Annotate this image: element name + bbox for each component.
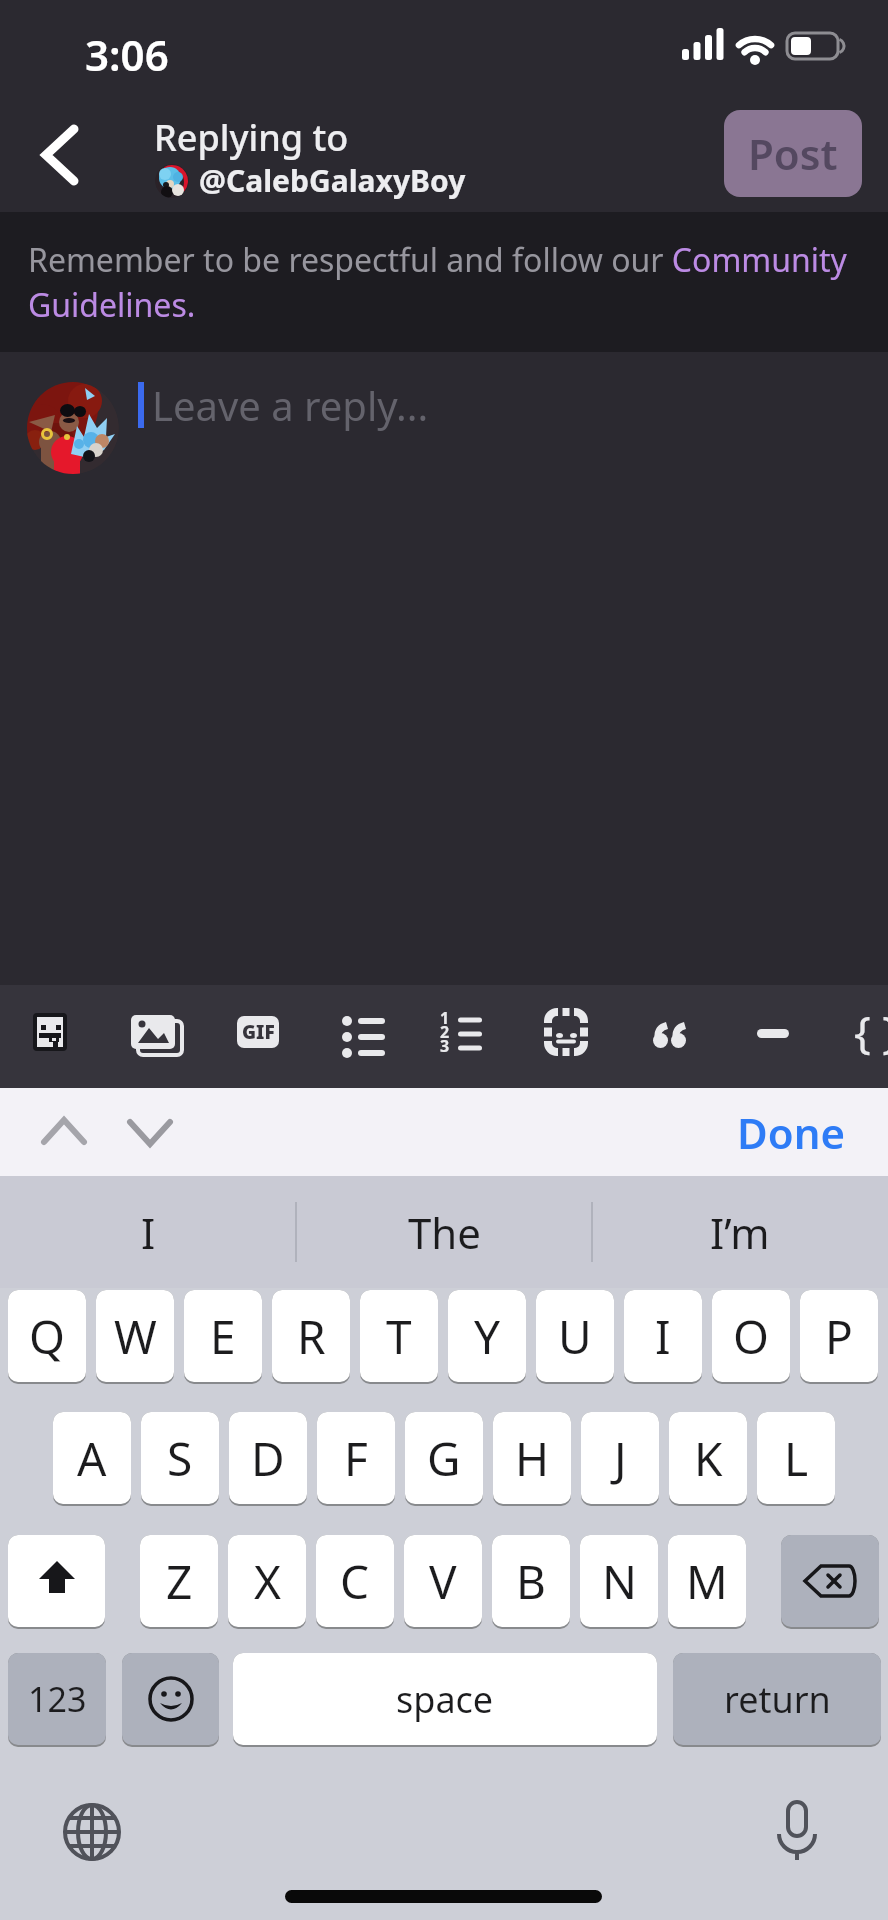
- staticText: W: [114, 1305, 157, 1368]
- button[interactable]: K: [669, 1412, 747, 1506]
- staticText: Q: [29, 1305, 65, 1368]
- button[interactable]: P: [800, 1290, 878, 1384]
- button[interactable]: [555, 985, 666, 1088]
- button[interactable]: X: [228, 1535, 306, 1629]
- button[interactable]: [777, 985, 888, 1088]
- button[interactable]: U: [536, 1290, 614, 1384]
- staticText: I: [655, 1305, 671, 1368]
- button[interactable]: W: [96, 1290, 174, 1384]
- button[interactable]: O: [712, 1290, 790, 1384]
- button[interactable]: A: [53, 1412, 131, 1506]
- staticText: R: [297, 1305, 326, 1368]
- button[interactable]: 123: [8, 1653, 106, 1747]
- staticText: space: [396, 1675, 494, 1724]
- button[interactable]: G: [405, 1412, 483, 1506]
- staticText: return: [724, 1675, 831, 1724]
- staticText: 1: [440, 1007, 450, 1029]
- staticText: I: [141, 1204, 156, 1261]
- button[interactable]: [27, 382, 119, 474]
- staticText: GIF: [242, 1019, 275, 1045]
- staticText: L: [784, 1427, 809, 1490]
- button[interactable]: F: [317, 1412, 395, 1506]
- button[interactable]: [444, 985, 555, 1088]
- staticText: V: [429, 1550, 457, 1613]
- staticText: Leave a reply...: [152, 378, 429, 432]
- button[interactable]: [781, 1535, 879, 1629]
- staticText: M: [686, 1550, 728, 1613]
- staticText: B: [516, 1550, 546, 1613]
- button[interactable]: I’m: [592, 1176, 888, 1288]
- button[interactable]: H: [493, 1412, 571, 1506]
- staticText: S: [167, 1427, 193, 1490]
- staticText: C: [340, 1550, 370, 1613]
- button[interactable]: J: [581, 1412, 659, 1506]
- staticText: The: [408, 1204, 481, 1261]
- button[interactable]: Leave a reply...: [0, 352, 888, 985]
- button[interactable]: [767, 1800, 827, 1860]
- button[interactable]: V: [404, 1535, 482, 1629]
- button[interactable]: C: [316, 1535, 394, 1629]
- staticText: N: [602, 1550, 637, 1613]
- button[interactable]: R: [272, 1290, 350, 1384]
- button[interactable]: L: [757, 1412, 835, 1506]
- staticText: Y: [474, 1305, 501, 1368]
- button[interactable]: return: [673, 1653, 881, 1747]
- staticText: H: [515, 1427, 550, 1490]
- button[interactable]: E: [184, 1290, 262, 1384]
- staticText: 123: [28, 1676, 87, 1722]
- button[interactable]: [333, 985, 444, 1088]
- button[interactable]: N: [580, 1535, 658, 1629]
- button[interactable]: [111, 985, 222, 1088]
- button[interactable]: [62, 1802, 122, 1862]
- staticText: Post: [748, 125, 838, 182]
- button[interactable]: [666, 985, 777, 1088]
- staticText: K: [694, 1427, 723, 1490]
- button[interactable]: T: [360, 1290, 438, 1384]
- staticText: { }: [854, 1001, 888, 1061]
- button[interactable]: D: [229, 1412, 307, 1506]
- staticText: D: [251, 1427, 285, 1490]
- staticText: U: [558, 1305, 592, 1368]
- staticText: Remember to be respectful and follow our…: [28, 238, 888, 327]
- button[interactable]: Y: [448, 1290, 526, 1384]
- staticText: Z: [166, 1550, 193, 1613]
- button[interactable]: Z: [140, 1535, 218, 1629]
- staticText: I’m: [710, 1204, 770, 1261]
- button[interactable]: [30, 115, 100, 195]
- button[interactable]: [8, 1535, 105, 1629]
- button[interactable]: The: [296, 1176, 592, 1288]
- staticText: Done: [737, 1104, 846, 1161]
- button[interactable]: S: [141, 1412, 219, 1506]
- staticText: 3:06: [85, 26, 169, 83]
- button[interactable]: Done: [737, 1104, 846, 1161]
- button[interactable]: B: [492, 1535, 570, 1629]
- button[interactable]: [0, 985, 111, 1088]
- staticText: 2: [440, 1021, 450, 1043]
- staticText: P: [825, 1305, 853, 1368]
- button[interactable]: M: [668, 1535, 746, 1629]
- staticText: F: [344, 1427, 368, 1490]
- button[interactable]: Q: [8, 1290, 86, 1384]
- button[interactable]: [222, 985, 333, 1088]
- staticText: X: [254, 1550, 281, 1613]
- button[interactable]: space: [233, 1653, 657, 1747]
- button[interactable]: I: [0, 1176, 296, 1288]
- button[interactable]: Post: [724, 110, 862, 197]
- staticText: E: [210, 1305, 236, 1368]
- staticText: T: [386, 1305, 412, 1368]
- staticText: 3: [440, 1035, 450, 1057]
- staticText: G: [427, 1427, 461, 1490]
- staticText: O: [733, 1305, 769, 1368]
- staticText: J: [614, 1427, 627, 1490]
- button[interactable]: [122, 1653, 219, 1747]
- staticText: Replying to: [154, 113, 349, 162]
- staticText: A: [77, 1427, 107, 1490]
- button[interactable]: I: [624, 1290, 702, 1384]
- staticText: @CalebGalaxyBoy: [199, 160, 466, 201]
